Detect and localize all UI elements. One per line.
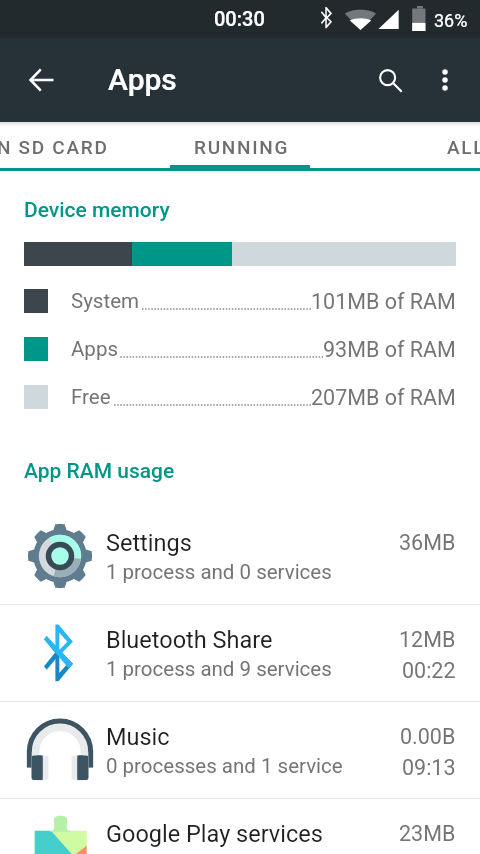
staticText: 93MB of RAM	[323, 337, 456, 362]
staticText: 101MB of RAM	[311, 289, 456, 314]
staticText: 1 process and 9 services	[106, 657, 332, 681]
staticText: Music	[106, 723, 170, 751]
staticText: ALL	[447, 136, 480, 158]
staticText: 23MB	[399, 821, 456, 846]
staticText: 207MB of RAM	[311, 385, 456, 410]
staticText: Apps	[108, 62, 177, 97]
staticText: Device memory	[24, 198, 170, 223]
staticText: App RAM usage	[24, 459, 175, 484]
staticText: 0 processes and 1 service	[106, 754, 343, 778]
staticText: RUNNING	[194, 136, 290, 158]
staticText: 36%	[434, 10, 468, 31]
staticText: 36MB	[399, 530, 456, 555]
button[interactable]: Music	[0, 702, 480, 798]
staticText: Free	[71, 385, 111, 409]
staticText: 12MB	[399, 627, 456, 652]
button[interactable]: Search	[366, 56, 414, 104]
staticText: Settings	[106, 529, 192, 557]
button[interactable]: Google Play services	[0, 799, 480, 854]
staticText: Bluetooth Share	[106, 626, 273, 654]
button[interactable]: Bluetooth Share	[0, 605, 480, 701]
staticText: 1 process and 0 services	[106, 560, 332, 584]
button[interactable]: Settings	[0, 508, 480, 604]
staticText: System	[71, 289, 140, 313]
staticText: 09:13	[402, 755, 456, 780]
button[interactable]: More options	[421, 56, 469, 104]
staticText: 00:22	[402, 658, 456, 683]
staticText: 00:30	[214, 7, 265, 30]
staticText: Google Play services	[106, 820, 323, 848]
staticText: 0.00B	[400, 724, 456, 749]
button[interactable]: Navigate up	[18, 56, 66, 104]
staticText: Apps	[71, 337, 118, 361]
staticText: N SD CARD	[0, 136, 109, 158]
